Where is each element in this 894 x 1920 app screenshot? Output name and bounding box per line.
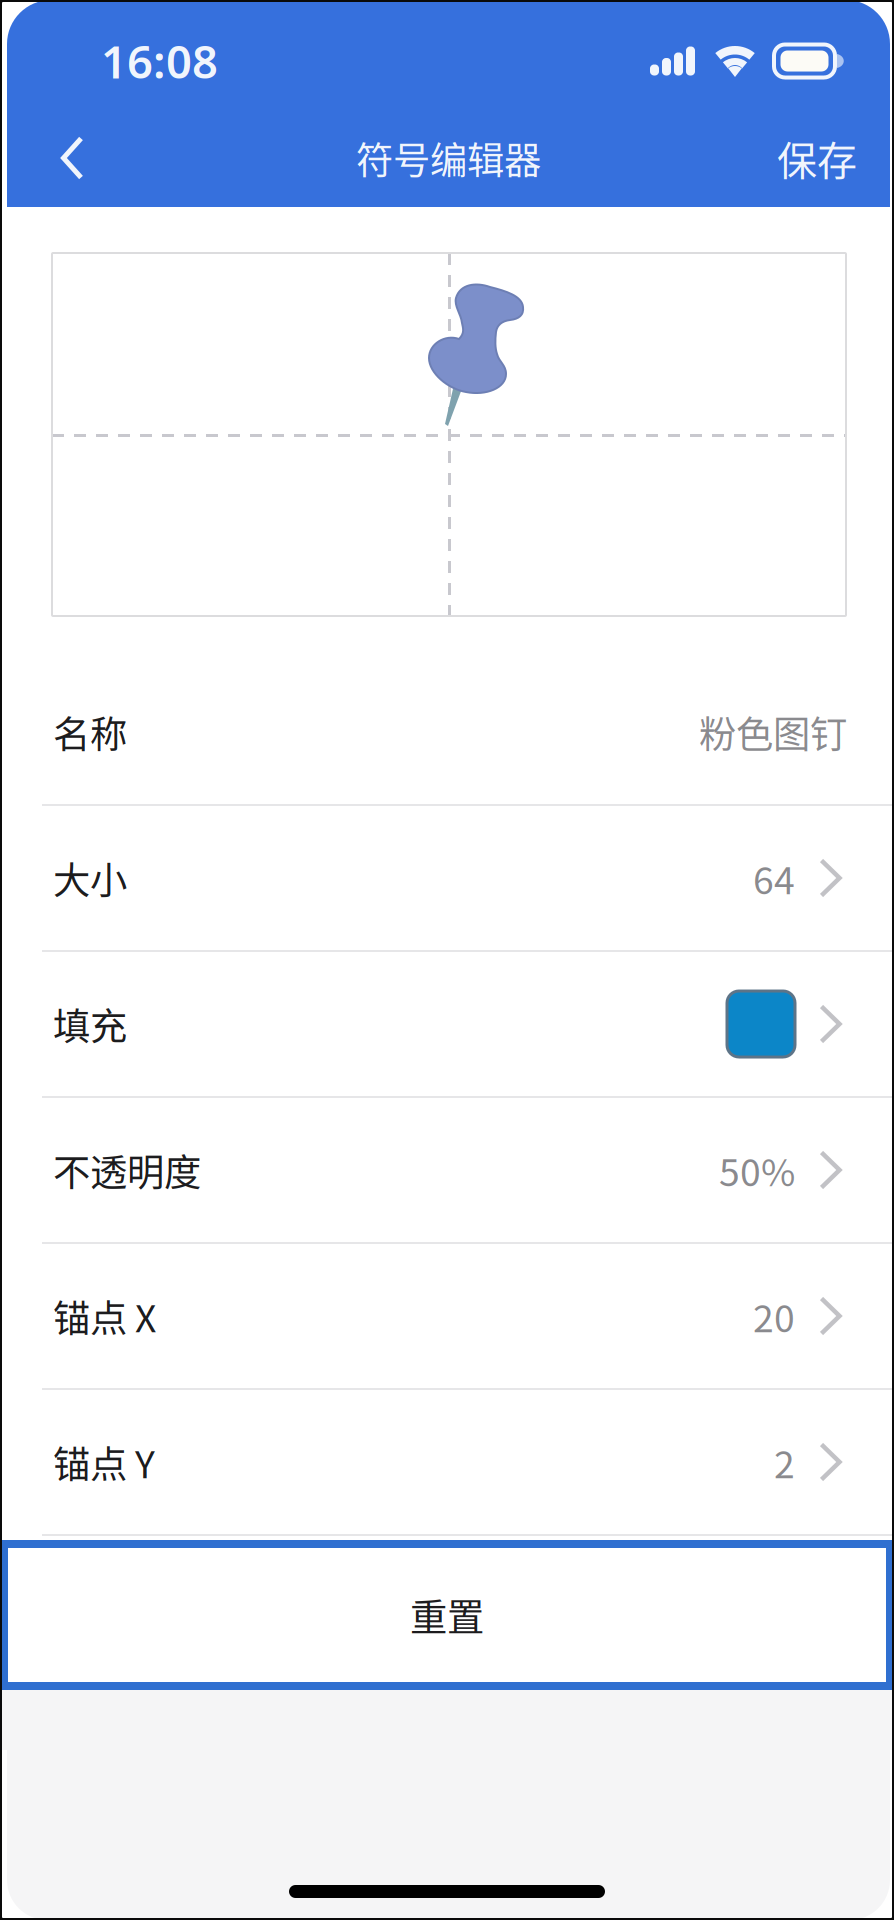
button[interactable]: 锚点 X <box>0 1244 894 1388</box>
button[interactable]: 重置 <box>8 1548 886 1682</box>
staticText: 名称 <box>53 705 127 759</box>
staticText: 50% <box>719 1143 795 1197</box>
staticText: 保存 <box>777 129 857 187</box>
staticText: 填充 <box>53 997 127 1051</box>
staticText: 16:08 <box>101 31 218 91</box>
staticText: 重置 <box>410 1588 484 1642</box>
button[interactable]: 名称 <box>0 660 894 804</box>
staticText: 锚点 Y <box>53 1435 155 1489</box>
button[interactable]: 锚点 Y <box>0 1390 894 1534</box>
staticText: 2 <box>774 1435 795 1489</box>
button[interactable]: 保存 <box>747 109 890 206</box>
staticText: 64 <box>753 851 795 905</box>
staticText: 锚点 X <box>53 1289 156 1343</box>
staticText: 20 <box>753 1289 795 1343</box>
button[interactable]: 大小 <box>0 806 894 950</box>
staticText: 不透明度 <box>53 1143 201 1197</box>
staticText: 符号编辑器 <box>356 131 541 185</box>
button[interactable]: 不透明度 <box>0 1098 894 1242</box>
staticText: 粉色图钉 <box>699 705 847 759</box>
staticText: 大小 <box>53 851 127 905</box>
button[interactable]: 填充 <box>0 952 894 1096</box>
button[interactable]: Back <box>7 109 122 206</box>
